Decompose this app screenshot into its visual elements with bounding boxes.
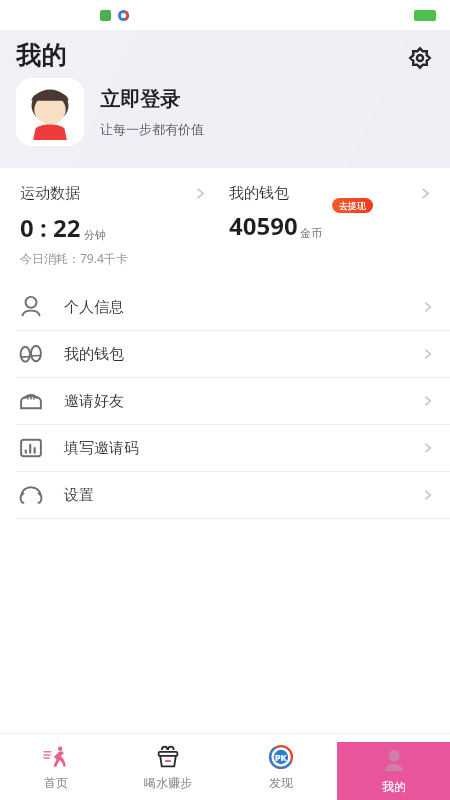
button[interactable]: 填写邀请码 xyxy=(0,425,450,471)
button[interactable]: 设置 xyxy=(0,472,450,518)
button[interactable]: 我的钱包 xyxy=(225,168,450,248)
staticText: 填写邀请码 xyxy=(64,439,139,458)
staticText: 邀请好友 xyxy=(64,392,124,411)
button[interactable]: Settings xyxy=(400,38,440,78)
staticText: 我的钱包 xyxy=(64,345,124,364)
staticText: 立即登录 xyxy=(100,87,180,112)
button[interactable]: 立即登录 xyxy=(16,78,204,146)
button[interactable]: 首页 xyxy=(0,733,112,800)
button[interactable]: PK xyxy=(224,733,337,800)
staticText: 让每一步都有价值 xyxy=(100,121,204,137)
button[interactable]: 我的钱包 xyxy=(0,331,450,377)
button[interactable]: 我的 xyxy=(337,742,450,800)
staticText: 去提现 xyxy=(339,200,366,211)
staticText: 喝水赚步 xyxy=(144,775,192,790)
staticText: 设置 xyxy=(64,486,94,505)
button[interactable]: 邀请好友 xyxy=(0,378,450,424)
staticText: 今日消耗：79.4千卡 xyxy=(20,250,128,266)
staticText: 首页 xyxy=(44,775,68,790)
button[interactable]: 个人信息 xyxy=(0,284,450,330)
staticText: 40590 xyxy=(229,209,298,242)
staticText: 发现 xyxy=(269,775,293,790)
button[interactable]: 去提现 xyxy=(332,198,373,213)
staticText: 我的 xyxy=(382,779,406,794)
button[interactable]: 喝水赚步 xyxy=(112,733,224,800)
button[interactable]: 运动数据 xyxy=(0,168,225,248)
staticText: PK xyxy=(275,751,287,763)
staticText: 运动数据 xyxy=(20,184,80,203)
staticText: 0 : 22 xyxy=(20,211,81,244)
staticText: 金币 xyxy=(300,226,322,240)
staticText: 我的 xyxy=(16,40,66,71)
staticText: 个人信息 xyxy=(64,298,124,317)
staticText: 分钟 xyxy=(84,228,106,242)
staticText: 我的钱包 xyxy=(229,184,289,203)
